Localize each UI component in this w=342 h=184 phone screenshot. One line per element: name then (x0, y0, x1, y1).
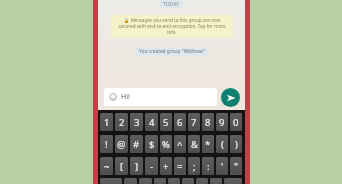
button[interactable]: ( (216, 135, 228, 153)
staticText: 5 (163, 116, 169, 129)
button[interactable]: You created group "Wikihow" (136, 47, 208, 56)
button[interactable]: # (130, 135, 143, 153)
staticText: 3 (134, 116, 140, 129)
button[interactable]: [ (115, 157, 128, 175)
button[interactable]: @ (115, 135, 128, 153)
staticText: ) (235, 138, 238, 151)
button[interactable]: 9 (216, 113, 228, 131)
staticText: 4 (149, 116, 155, 129)
button[interactable]: Send (221, 88, 240, 107)
staticText: * (205, 138, 211, 151)
button[interactable]: , (154, 178, 166, 184)
button[interactable]: ] (130, 157, 143, 175)
button[interactable]: ) (230, 135, 242, 153)
button[interactable]: TODAY (160, 0, 183, 8)
staticText: & (191, 138, 198, 151)
staticText: ~ (104, 160, 110, 173)
staticText: : (207, 160, 210, 173)
button[interactable]: 8 (202, 113, 214, 131)
staticText: $ (149, 138, 155, 151)
staticText: 1 (104, 116, 110, 129)
staticText: ! (105, 138, 108, 151)
staticText: TODAY (163, 1, 180, 7)
staticText: # (133, 138, 140, 151)
button[interactable]: : (202, 157, 214, 175)
staticText: [ (120, 160, 124, 173)
button[interactable]: < (124, 178, 137, 184)
button[interactable]: 4 (145, 113, 158, 131)
button[interactable]: ~ (100, 157, 113, 175)
staticText: ; (193, 160, 196, 173)
staticText: = (177, 160, 183, 173)
staticText: 7 (191, 116, 197, 129)
button[interactable]: 2 (115, 113, 128, 131)
staticText: 6 (177, 116, 183, 129)
button[interactable]: . (182, 178, 194, 184)
button[interactable]: + (160, 157, 172, 175)
staticText: 8 (205, 116, 211, 129)
staticText: You created group "Wikihow" (139, 48, 205, 55)
button[interactable]: ↵ (224, 178, 242, 184)
button[interactable]: & (188, 135, 200, 153)
staticText: Hi! (121, 92, 130, 102)
button[interactable]: 🔒 Messages you send to this group are no… (111, 15, 233, 37)
button[interactable]: ? (210, 178, 222, 184)
button[interactable]: * (202, 135, 214, 153)
staticText: @ (117, 138, 126, 151)
button[interactable]: 0 (230, 113, 242, 131)
button[interactable]: 7 (188, 113, 200, 131)
staticText: 0 (233, 116, 239, 129)
button[interactable]: ^ (174, 135, 186, 153)
button[interactable]: ; (188, 157, 200, 175)
staticText: 🔒 Messages you send to this group are no… (115, 17, 229, 35)
staticText: % (162, 138, 170, 151)
button[interactable]: % (160, 135, 172, 153)
button[interactable]: > (139, 178, 152, 184)
staticText: ( (221, 138, 224, 151)
staticText: 2 (119, 116, 125, 129)
button[interactable]: - (145, 157, 158, 175)
staticText: ] (135, 160, 139, 173)
button[interactable]: = (174, 157, 186, 175)
button[interactable]: Hi! (104, 88, 217, 106)
button[interactable]: ' (216, 157, 228, 175)
button[interactable]: ABC (100, 178, 122, 184)
button[interactable]: 6 (174, 113, 186, 131)
button[interactable]: 5 (160, 113, 172, 131)
button[interactable]: / (196, 178, 208, 184)
button[interactable]: ! (100, 135, 113, 153)
button[interactable]: 3 (130, 113, 143, 131)
staticText: " (234, 160, 238, 173)
button[interactable] (168, 178, 180, 184)
staticText: - (150, 160, 154, 173)
staticText: ' (221, 160, 224, 173)
staticText: 9 (219, 116, 225, 129)
button[interactable]: $ (145, 135, 158, 153)
button[interactable]: 1 (100, 113, 113, 131)
button[interactable]: " (230, 157, 242, 175)
staticText: + (163, 160, 169, 173)
staticText: ^ (177, 138, 183, 151)
